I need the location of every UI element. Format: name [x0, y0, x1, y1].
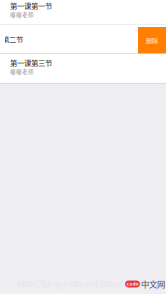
button[interactable]: 第一课第三节	[0, 54, 166, 83]
staticText: 第一课第二节	[0, 34, 23, 44]
staticText: 删除	[146, 36, 158, 45]
staticText: 嘟嘟老师	[10, 67, 34, 75]
staticText: 中文网	[141, 278, 165, 290]
staticText: 第一课第一节	[10, 0, 52, 11]
button[interactable]: 删除	[138, 27, 166, 53]
button[interactable]: 第一课第一节	[0, 0, 166, 24]
staticText: http://blog.csdn.net/latest	[17, 279, 124, 289]
staticText: 第一课第三节	[10, 57, 52, 68]
staticText: 嘟嘟老师	[10, 10, 34, 18]
staticText: csdn	[126, 281, 138, 286]
